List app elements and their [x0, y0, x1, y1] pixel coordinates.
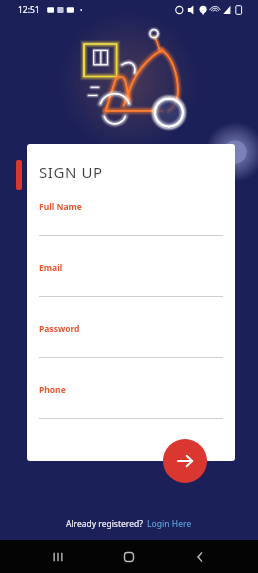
- staticText: Full Name: [39, 201, 82, 213]
- staticText: Password: [39, 323, 80, 335]
- button[interactable]: Back: [192, 549, 208, 565]
- button[interactable]: Login Here: [147, 518, 192, 530]
- button[interactable]: Home: [121, 549, 137, 565]
- staticText: Login Here: [147, 518, 192, 530]
- staticText: Email: [39, 262, 63, 274]
- staticText: SIGN UP: [39, 162, 103, 182]
- button[interactable]: Submit sign up: [163, 439, 207, 483]
- button[interactable]: Recent apps: [50, 549, 66, 565]
- staticText: Phone: [39, 384, 66, 396]
- staticText: Already registered?: [66, 518, 143, 530]
- staticText: 12:51: [18, 4, 40, 16]
